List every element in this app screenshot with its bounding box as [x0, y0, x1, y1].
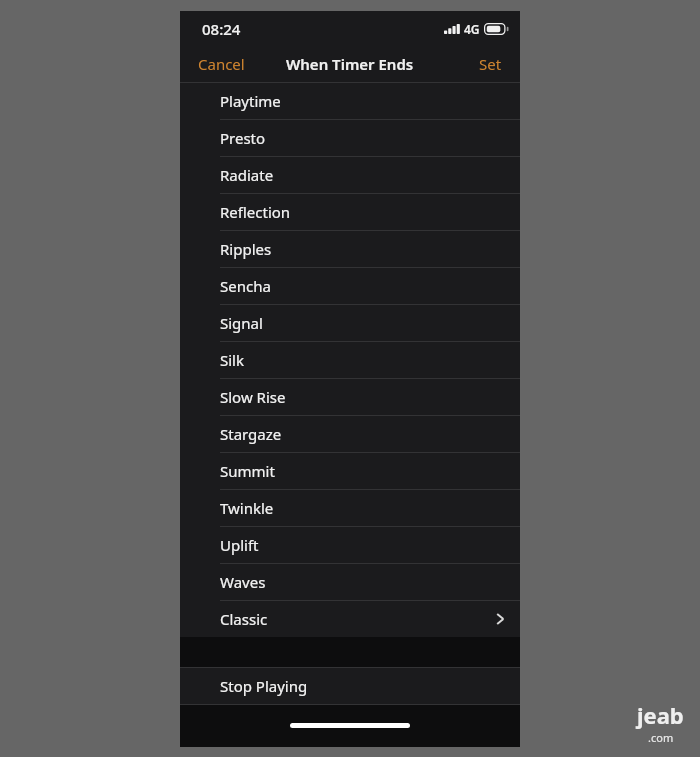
staticText: Ripples — [220, 239, 272, 259]
button[interactable]: Summit — [180, 453, 520, 489]
button[interactable]: Reflection — [180, 194, 520, 230]
button[interactable]: Presto — [180, 120, 520, 156]
staticText: 4G — [464, 21, 480, 37]
staticText: 08:24 — [202, 19, 241, 39]
button[interactable]: Signal — [180, 305, 520, 341]
button[interactable]: Stargaze — [180, 416, 520, 452]
button[interactable]: Classic — [180, 601, 520, 637]
staticText: Stop Playing — [220, 676, 308, 696]
staticText: When Timer Ends — [286, 54, 414, 74]
staticText: Twinkle — [220, 498, 274, 518]
staticText: jeab — [637, 700, 684, 730]
staticText: Signal — [220, 313, 263, 333]
button[interactable]: Uplift — [180, 527, 520, 563]
other: More Classic tones — [496, 612, 504, 626]
button[interactable]: Slow Rise — [180, 379, 520, 415]
button[interactable]: Waves — [180, 564, 520, 600]
staticText: Silk — [220, 350, 244, 370]
button[interactable]: Ripples — [180, 231, 520, 267]
staticText: Radiate — [220, 165, 274, 185]
button[interactable]: Silk — [180, 342, 520, 378]
button[interactable]: Cancel — [180, 47, 263, 81]
staticText: Waves — [220, 572, 266, 592]
staticText: Presto — [220, 128, 266, 148]
staticText: Stargaze — [220, 424, 282, 444]
staticText: Summit — [220, 461, 275, 481]
button[interactable]: Twinkle — [180, 490, 520, 526]
button[interactable]: Set — [461, 47, 520, 81]
staticText: Playtime — [220, 91, 281, 111]
staticText: .com — [648, 730, 674, 745]
staticText: Slow Rise — [220, 387, 286, 407]
staticText: Sencha — [220, 276, 271, 296]
button[interactable]: Playtime — [180, 83, 520, 119]
staticText: Classic — [220, 609, 268, 629]
button[interactable]: Sencha — [180, 268, 520, 304]
staticText: Cancel — [198, 54, 245, 74]
staticText: Uplift — [220, 535, 259, 555]
staticText: Set — [479, 54, 502, 74]
staticText: Reflection — [220, 202, 291, 222]
button[interactable]: Radiate — [180, 157, 520, 193]
button[interactable]: Stop Playing — [180, 668, 520, 704]
